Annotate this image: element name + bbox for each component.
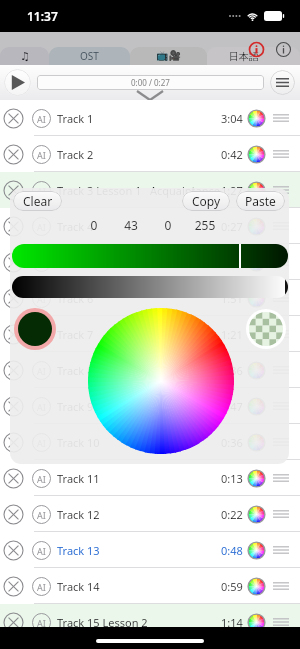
button[interactable]: Remove: [0, 424, 300, 460]
other: Remove: [3, 360, 24, 381]
staticText: AI: [37, 293, 46, 305]
other: Reorder: [273, 114, 289, 122]
other: Remove: [3, 180, 24, 201]
button[interactable]: Color: [247, 361, 266, 380]
button[interactable]: Color: [247, 325, 266, 344]
other: Reorder: [273, 330, 289, 338]
staticText: AI: [37, 257, 46, 269]
staticText: 0:27: [221, 219, 243, 234]
other: Remove: [3, 396, 24, 417]
other: Reorder: [273, 546, 289, 554]
staticText: Track 6: [57, 291, 94, 306]
staticText: 📺🎥: [156, 50, 181, 62]
button[interactable]: Remove: [0, 460, 300, 496]
other: Collapse: [137, 91, 163, 100]
staticText: 0:13: [221, 471, 243, 486]
button[interactable]: Remove: [0, 496, 300, 532]
staticText: 0:22: [221, 507, 243, 522]
button[interactable]: 日本語: [207, 47, 300, 65]
staticText: AI: [37, 149, 46, 161]
button[interactable]: Clear: [13, 191, 62, 211]
button[interactable]: Color: [247, 217, 266, 236]
button[interactable]: OST: [49, 47, 130, 65]
button[interactable]: Remove: [0, 316, 300, 352]
button[interactable]: Paste: [236, 191, 285, 211]
button[interactable]: Remove: [0, 208, 300, 244]
other: Reorder: [273, 294, 289, 302]
staticText: 255: [187, 217, 223, 233]
staticText: 1:14: [221, 615, 243, 630]
button[interactable]: Play: [4, 69, 31, 96]
button[interactable]: Color: [247, 109, 266, 128]
button[interactable]: Color: [247, 145, 266, 164]
other: Remove: [3, 504, 24, 525]
button[interactable]: Alert: [248, 41, 265, 58]
button[interactable]: Color: [247, 505, 266, 524]
staticText: AI: [37, 545, 46, 557]
staticText: 0:42: [221, 147, 243, 162]
button[interactable]: Remove: [0, 280, 300, 316]
button[interactable]: Remove: [0, 532, 300, 568]
staticText: 0: [76, 217, 112, 233]
button[interactable]: Color: [247, 433, 266, 452]
staticText: Track 5: [57, 255, 94, 270]
button[interactable]: Remove: [0, 604, 300, 640]
other: Reorder: [273, 474, 289, 482]
button[interactable]: ♫: [0, 47, 49, 65]
button[interactable]: 0:00 / 0:27: [37, 75, 264, 90]
staticText: ♫: [20, 50, 30, 63]
other: Remove: [3, 216, 24, 237]
staticText: 43: [113, 217, 149, 233]
button[interactable]: Remove: [0, 172, 300, 208]
other: Remove: [3, 324, 24, 345]
staticText: OST: [80, 49, 99, 63]
button[interactable]: Remove: [0, 100, 300, 136]
other: Reorder: [273, 186, 289, 194]
other: Reorder: [273, 150, 289, 158]
other: Reorder: [273, 618, 289, 626]
button[interactable]: Color: [247, 469, 266, 488]
staticText: 0:47: [221, 399, 243, 414]
staticText: Track 4: [57, 219, 94, 234]
button[interactable]: Remove: [0, 388, 300, 424]
button[interactable]: Remove: [0, 136, 300, 172]
button[interactable]: Remove: [0, 352, 300, 388]
button[interactable]: Remove: [0, 244, 300, 280]
staticText: 1:27: [221, 183, 243, 198]
staticText: Paste: [245, 193, 276, 209]
button[interactable]: Color: [247, 181, 266, 200]
staticText: 11:37: [27, 8, 58, 24]
other: Remove: [3, 540, 24, 561]
button[interactable]: 📺🎥: [130, 47, 207, 65]
button[interactable]: Copy: [182, 191, 230, 211]
button[interactable]: Current color: [14, 308, 56, 350]
button[interactable]: Remove: [0, 568, 300, 604]
button[interactable]: Color: [247, 541, 266, 560]
staticText: Track 7: [57, 327, 94, 342]
staticText: Track 14: [57, 579, 100, 594]
staticText: Track 15 Lesson 2: [57, 615, 148, 630]
staticText: 3:04: [221, 111, 243, 126]
button[interactable]: Transparency: [246, 309, 286, 349]
button[interactable]: Color wheel: [88, 308, 234, 454]
button[interactable]: Color: [247, 289, 266, 308]
staticText: AI: [37, 185, 46, 197]
staticText: Track 3 Lesson 1 Acquaintance: [57, 183, 221, 198]
button[interactable]: Menu: [270, 70, 295, 95]
staticText: AI: [37, 581, 46, 593]
staticText: 0:48: [221, 543, 243, 558]
button[interactable]: Information: [275, 41, 292, 58]
button[interactable]: Color: [247, 253, 266, 272]
other: Remove: [3, 576, 24, 597]
other: Remove: [3, 612, 24, 633]
other: Remove: [3, 288, 24, 309]
button[interactable]: Color: [247, 397, 266, 416]
staticText: 0:36: [221, 363, 243, 378]
button[interactable]: Color: [247, 613, 266, 632]
button[interactable]: Color: [247, 577, 266, 596]
other: Reorder: [273, 582, 289, 590]
